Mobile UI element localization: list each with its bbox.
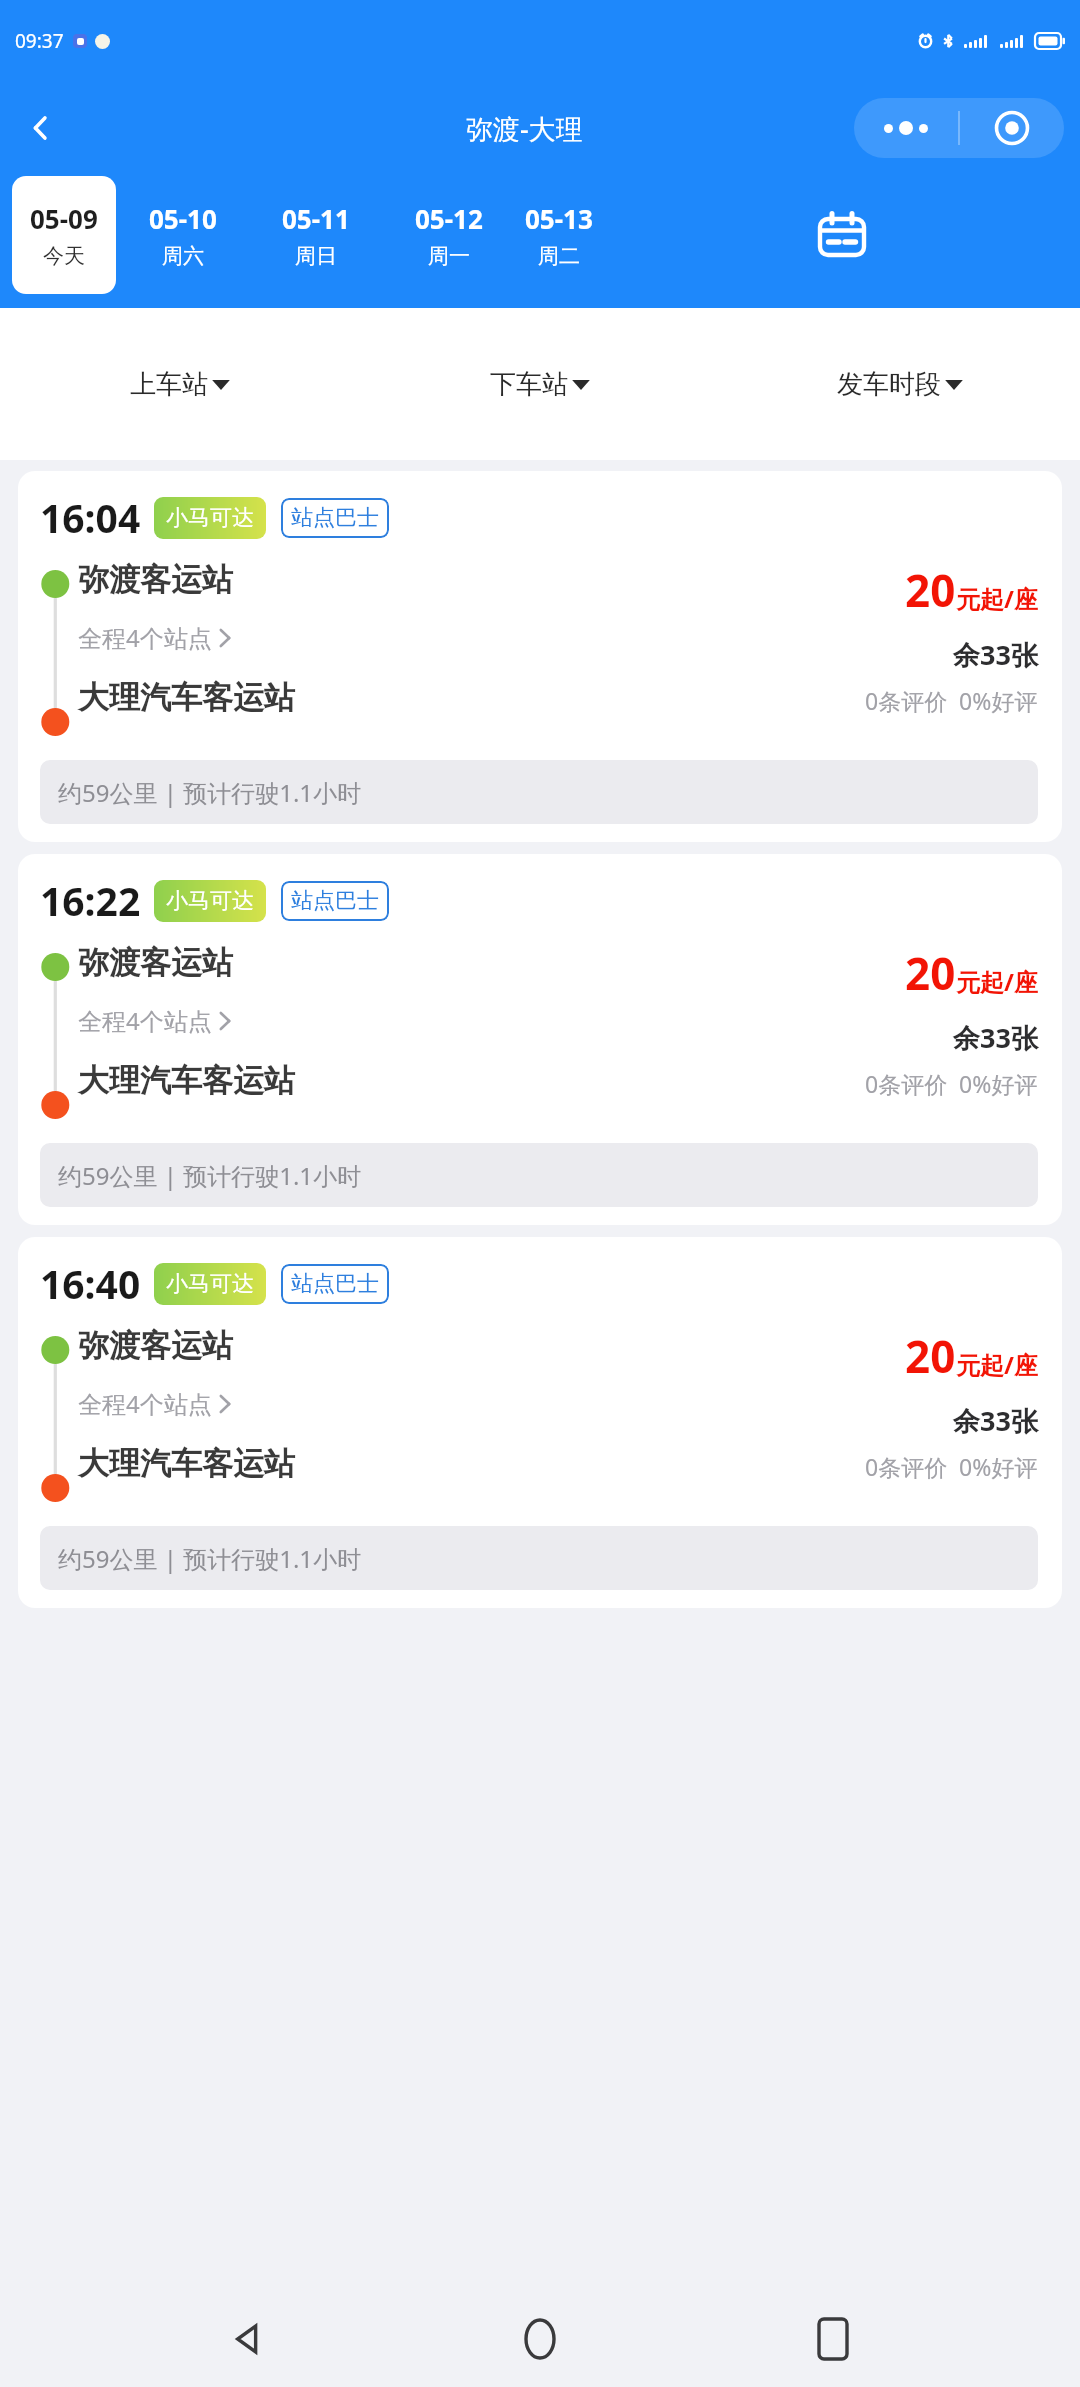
- staticText: 弥渡客运站: [78, 943, 233, 982]
- staticText: 元起/座: [956, 1348, 1038, 1381]
- button[interactable]: 全程4个站点: [78, 1004, 232, 1037]
- button[interactable]: 上车站: [0, 308, 360, 460]
- staticText: 大理汽车客运站: [78, 1061, 295, 1100]
- staticText: 大理汽车客运站: [78, 1444, 295, 1483]
- staticText: 发车时段: [837, 368, 941, 401]
- staticText: 大理汽车客运站: [78, 678, 295, 717]
- staticText: 0条评价 0%好评: [865, 1068, 1038, 1099]
- staticText: 下车站: [490, 368, 568, 401]
- staticText: 周二: [538, 243, 580, 269]
- staticText: 弥渡-大理: [466, 110, 583, 147]
- staticText: 0条评价 0%好评: [865, 1451, 1038, 1482]
- staticText: 余33张: [953, 636, 1038, 673]
- staticText: 弥渡客运站: [78, 560, 233, 599]
- button[interactable]: Back: [12, 99, 70, 157]
- staticText: 16:04: [40, 491, 141, 544]
- staticText: 元起/座: [956, 582, 1038, 615]
- button[interactable]: Calendar: [603, 174, 1080, 296]
- staticText: 余33张: [953, 1019, 1038, 1056]
- staticText: 16:22: [40, 874, 141, 927]
- staticText: 20: [905, 943, 956, 1003]
- staticText: 05-12: [415, 201, 483, 236]
- button[interactable]: 05-12: [382, 176, 515, 294]
- staticText: 上车站: [130, 368, 208, 401]
- staticText: 全程4个站点: [78, 621, 212, 654]
- button[interactable]: 全程4个站点: [78, 1387, 232, 1420]
- staticText: 09:37: [15, 28, 64, 54]
- staticText: 05-10: [149, 201, 217, 236]
- staticText: 05-11: [282, 201, 350, 236]
- button[interactable]: Recent apps: [787, 2293, 879, 2385]
- button[interactable]: Back: [201, 2293, 293, 2385]
- button[interactable]: 05-11: [249, 176, 382, 294]
- button[interactable]: Home: [494, 2293, 586, 2385]
- staticText: 今天: [43, 243, 85, 269]
- staticText: 16:40: [40, 1257, 141, 1310]
- staticText: 周一: [428, 243, 470, 269]
- button[interactable]: Locate: [960, 98, 1064, 158]
- staticText: 20: [905, 560, 956, 620]
- staticText: 20: [905, 1326, 956, 1386]
- button[interactable]: 下车站: [360, 308, 720, 460]
- button[interactable]: More options: [854, 98, 958, 158]
- button[interactable]: 05-13: [515, 176, 603, 294]
- button[interactable]: 发车时段: [720, 308, 1080, 460]
- button[interactable]: 05-10: [116, 176, 249, 294]
- staticText: 0条评价 0%好评: [865, 685, 1038, 716]
- staticText: 站点巴士: [291, 887, 379, 915]
- button[interactable]: 全程4个站点: [78, 621, 232, 654]
- staticText: 小马可达: [166, 504, 254, 532]
- staticText: 全程4个站点: [78, 1004, 212, 1037]
- staticText: 小马可达: [166, 887, 254, 915]
- staticText: 余33张: [953, 1402, 1038, 1439]
- staticText: 周六: [162, 243, 204, 269]
- staticText: 05-09: [30, 201, 98, 236]
- staticText: 站点巴士: [291, 1270, 379, 1298]
- button[interactable]: 16:40: [18, 1237, 1062, 1608]
- staticText: 弥渡客运站: [78, 1326, 233, 1365]
- staticText: 小马可达: [166, 1270, 254, 1298]
- staticText: 约59公里 | 预计行驶1.1小时: [58, 1542, 362, 1575]
- staticText: 05-13: [525, 201, 593, 236]
- staticText: 约59公里 | 预计行驶1.1小时: [58, 776, 362, 809]
- staticText: 约59公里 | 预计行驶1.1小时: [58, 1159, 362, 1192]
- staticText: 站点巴士: [291, 504, 379, 532]
- button[interactable]: 05-09: [12, 176, 116, 294]
- staticText: 周日: [295, 243, 337, 269]
- staticText: 全程4个站点: [78, 1387, 212, 1420]
- button[interactable]: 16:22: [18, 854, 1062, 1225]
- staticText: 元起/座: [956, 965, 1038, 998]
- button[interactable]: 16:04: [18, 471, 1062, 842]
